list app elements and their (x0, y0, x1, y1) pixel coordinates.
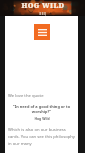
staticText: HOG WILD (21, 1, 65, 11)
staticText: Hog Wild (34, 116, 50, 121)
staticText: Which is also on our business cards. You… (8, 127, 75, 146)
button[interactable]: Open menu (34, 24, 50, 40)
staticText: "In need of a good thing or to worship?" (8, 104, 75, 114)
staticText: BBQ (39, 12, 47, 15)
staticText: We love the quote (8, 93, 44, 99)
